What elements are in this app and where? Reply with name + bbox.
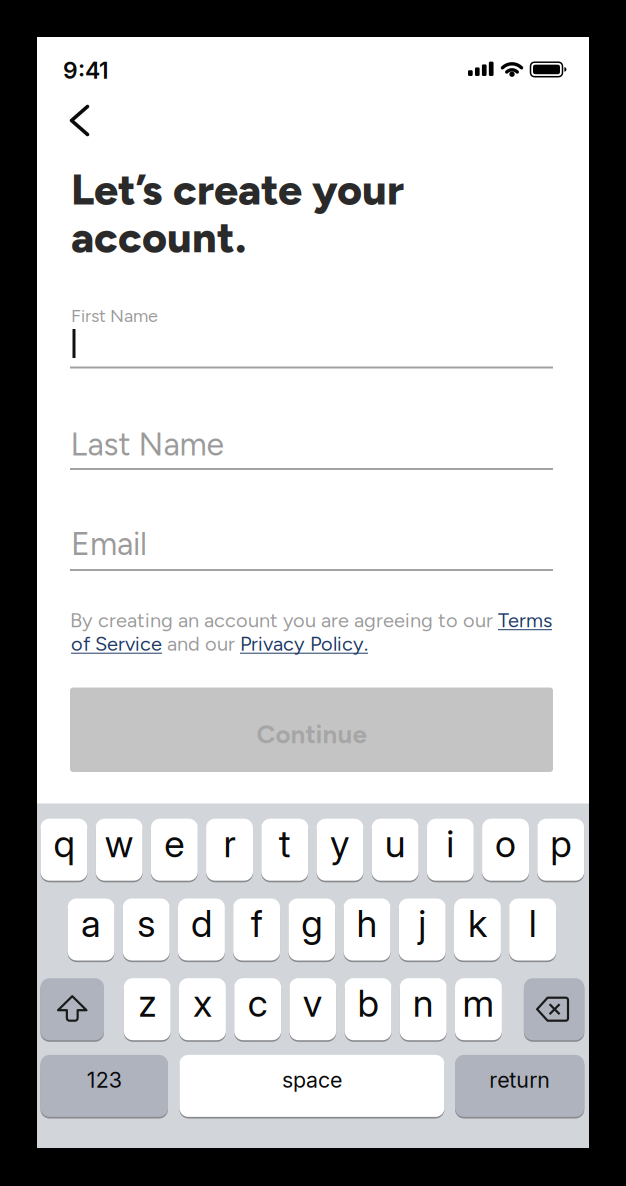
button[interactable]: w	[96, 819, 143, 881]
staticText: space	[282, 1067, 342, 1093]
button[interactable]: k	[454, 898, 501, 960]
staticText: q	[53, 821, 74, 866]
staticText: Privacy Policy.	[240, 632, 368, 656]
staticText: o	[495, 821, 516, 866]
button[interactable]: h	[344, 898, 390, 960]
staticText: Continue	[256, 719, 366, 750]
staticText: By creating an account you are agreeing …	[70, 608, 498, 632]
button[interactable]: d	[178, 898, 225, 960]
button[interactable]: c	[234, 978, 281, 1040]
staticText: k	[468, 901, 487, 946]
button[interactable]: return	[455, 1055, 584, 1117]
staticText: Email	[71, 524, 147, 563]
staticText: i	[446, 821, 454, 866]
staticText: l	[529, 901, 537, 946]
button[interactable]: i	[427, 819, 474, 881]
staticText: 9:41	[63, 56, 109, 84]
staticText: v	[303, 981, 323, 1026]
button[interactable]: Continue	[70, 687, 553, 772]
button[interactable]: 123	[40, 1055, 168, 1117]
button[interactable]: p	[537, 819, 584, 881]
button[interactable]: l	[509, 898, 556, 960]
button[interactable]: y	[316, 819, 363, 881]
button[interactable]: j	[399, 898, 446, 960]
staticText: Let’s create your	[71, 164, 404, 215]
staticText: Terms	[498, 608, 552, 632]
button[interactable]: Privacy Policy.	[240, 632, 368, 656]
staticText: g	[301, 901, 322, 946]
button[interactable]: a	[68, 898, 114, 960]
button[interactable]: z	[124, 978, 171, 1040]
staticText: f	[251, 901, 263, 946]
button[interactable]: s	[123, 898, 170, 960]
staticText: c	[248, 981, 268, 1026]
button[interactable]: v	[289, 978, 336, 1040]
staticText: h	[357, 901, 378, 946]
button[interactable]: Terms	[498, 608, 552, 632]
staticText: j	[418, 901, 426, 946]
staticText: x	[193, 981, 212, 1026]
staticText: return	[489, 1067, 550, 1093]
button[interactable]: e	[151, 819, 198, 881]
staticText: a	[81, 901, 101, 946]
staticText: e	[164, 821, 184, 866]
button[interactable]: Shift	[40, 978, 104, 1040]
staticText: z	[138, 981, 156, 1026]
button[interactable]: g	[288, 898, 335, 960]
button[interactable]: space	[179, 1055, 444, 1117]
staticText: account.	[71, 211, 246, 263]
staticText: m	[462, 981, 494, 1026]
staticText: t	[279, 821, 291, 866]
staticText: n	[413, 981, 434, 1026]
button[interactable]: m	[455, 978, 502, 1040]
staticText: d	[191, 901, 212, 946]
staticText: b	[358, 981, 379, 1026]
staticText: u	[385, 821, 406, 866]
staticText: w	[105, 821, 134, 866]
staticText: 123	[87, 1067, 122, 1093]
staticText: Last Name	[70, 425, 223, 463]
button[interactable]: o	[482, 819, 529, 881]
staticText: and our	[162, 632, 240, 656]
button[interactable]: x	[179, 978, 226, 1040]
button[interactable]: f	[233, 898, 280, 960]
button[interactable]: of Service	[71, 632, 162, 656]
staticText: First Name	[71, 305, 158, 327]
staticText: p	[550, 821, 571, 866]
staticText: of Service	[71, 632, 162, 656]
button[interactable]: t	[261, 819, 308, 881]
button[interactable]: u	[372, 819, 419, 881]
button[interactable]: r	[206, 819, 253, 881]
button[interactable]: q	[40, 819, 87, 881]
staticText: s	[137, 901, 155, 946]
button[interactable]: Delete	[524, 978, 584, 1040]
button[interactable]: b	[345, 978, 391, 1040]
button[interactable]: n	[400, 978, 447, 1040]
staticText: y	[330, 821, 350, 866]
button[interactable]: Back	[59, 97, 103, 145]
staticText: r	[224, 821, 236, 866]
